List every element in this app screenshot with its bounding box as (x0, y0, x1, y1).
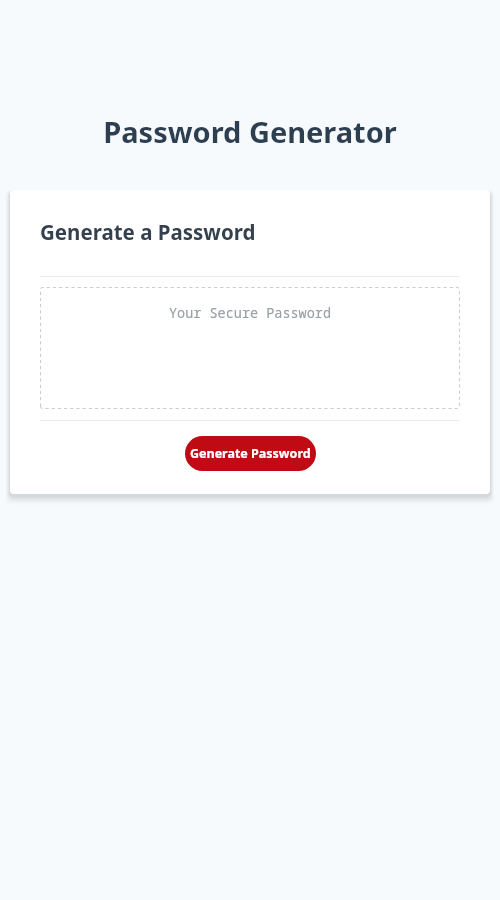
staticText: Generate Password (190, 445, 311, 462)
staticText: Password Generator (0, 112, 500, 151)
staticText: Your Secure Password (40, 304, 460, 322)
staticText: Generate a Password (40, 218, 256, 246)
button[interactable]: Generate Password (185, 436, 316, 471)
